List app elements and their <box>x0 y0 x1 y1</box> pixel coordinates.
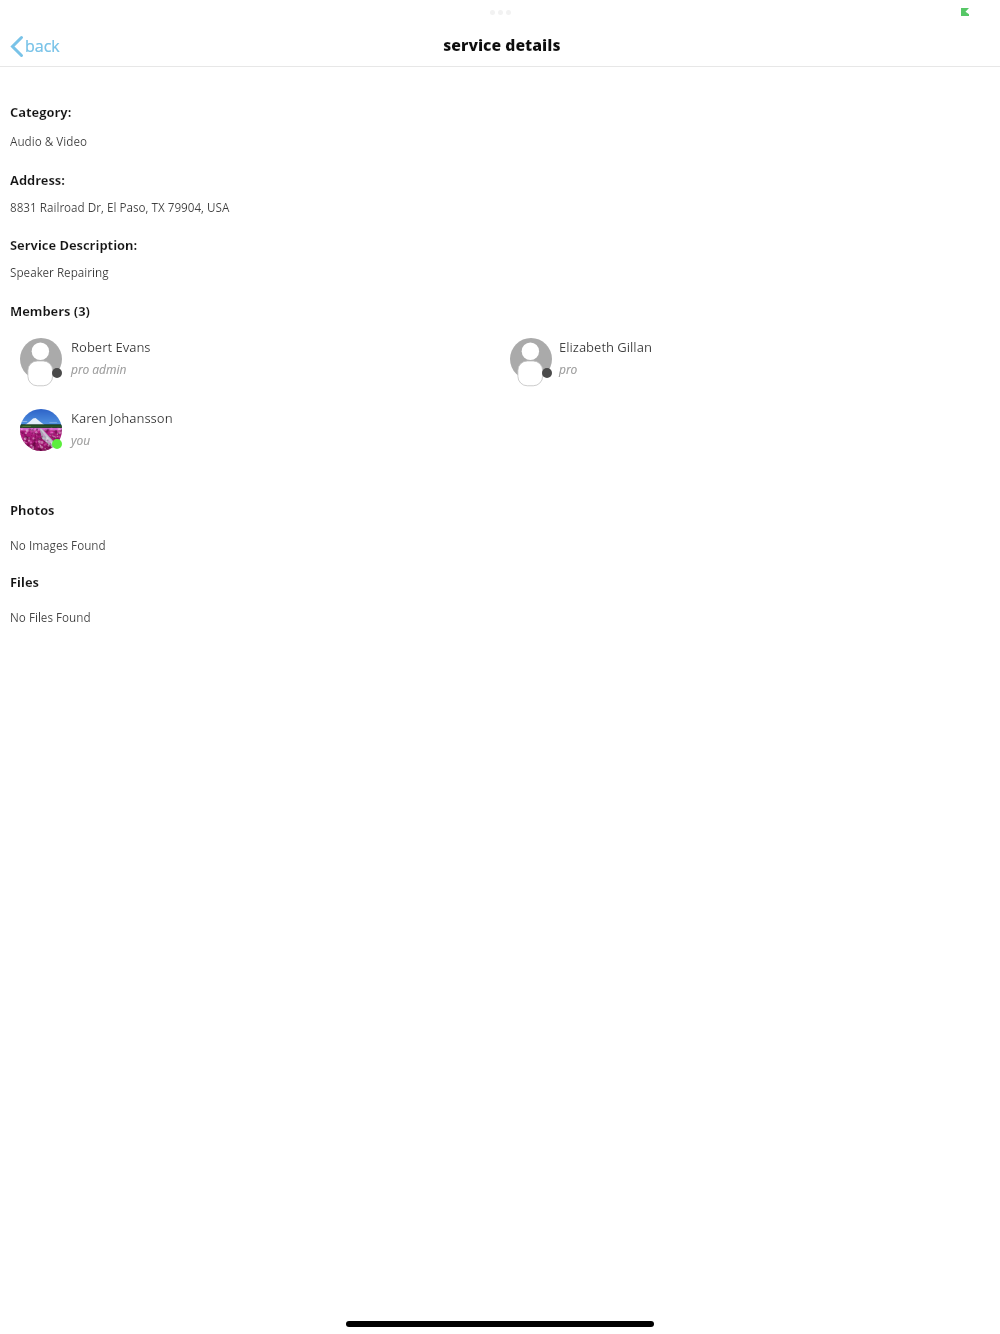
staticText: 8831 Railroad Dr, El Paso, TX 79904, USA <box>10 199 230 215</box>
staticText: Elizabeth Gillan <box>559 338 652 356</box>
staticText: No Files Found <box>10 609 91 625</box>
staticText: Members (3) <box>10 302 90 320</box>
staticText: Files <box>10 573 39 591</box>
staticText: No Images Found <box>10 537 106 553</box>
staticText: pro <box>559 361 578 377</box>
staticText: you <box>71 432 91 448</box>
button[interactable]: Karen Johansson <box>12 403 272 457</box>
staticText: back <box>25 35 60 57</box>
staticText: Service Description: <box>10 236 138 254</box>
staticText: service details <box>443 34 561 55</box>
button[interactable]: Back <box>2 28 72 62</box>
staticText: Audio & Video <box>10 133 88 149</box>
staticText: Karen Johansson <box>71 409 173 427</box>
button[interactable]: Robert Evans <box>12 332 272 386</box>
staticText: Category: <box>10 103 72 121</box>
staticText: Photos <box>10 501 55 519</box>
staticText: Robert Evans <box>71 338 151 356</box>
staticText: Speaker Repairing <box>10 264 109 280</box>
staticText: Address: <box>10 171 65 189</box>
staticText: pro admin <box>71 361 127 377</box>
button[interactable]: Elizabeth Gillan <box>502 332 762 386</box>
